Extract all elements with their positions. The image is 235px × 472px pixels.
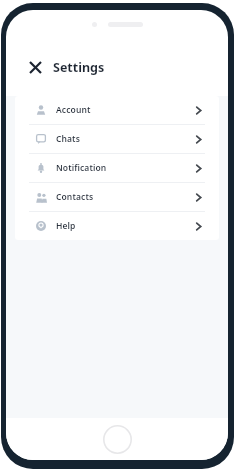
staticText: Chats	[56, 133, 80, 145]
button[interactable]: Account	[15, 96, 219, 124]
button[interactable]: Contacts	[15, 183, 219, 211]
button[interactable]: Help	[15, 212, 219, 240]
staticText: Notification	[56, 162, 107, 174]
staticText: Contacts	[56, 191, 94, 203]
staticText: Help	[56, 220, 76, 232]
button[interactable]: Close settings	[26, 58, 44, 76]
button[interactable]: Chats	[15, 125, 219, 153]
staticText: Settings	[53, 59, 105, 76]
button[interactable]: Notification	[15, 154, 219, 182]
staticText: Account	[56, 104, 91, 116]
